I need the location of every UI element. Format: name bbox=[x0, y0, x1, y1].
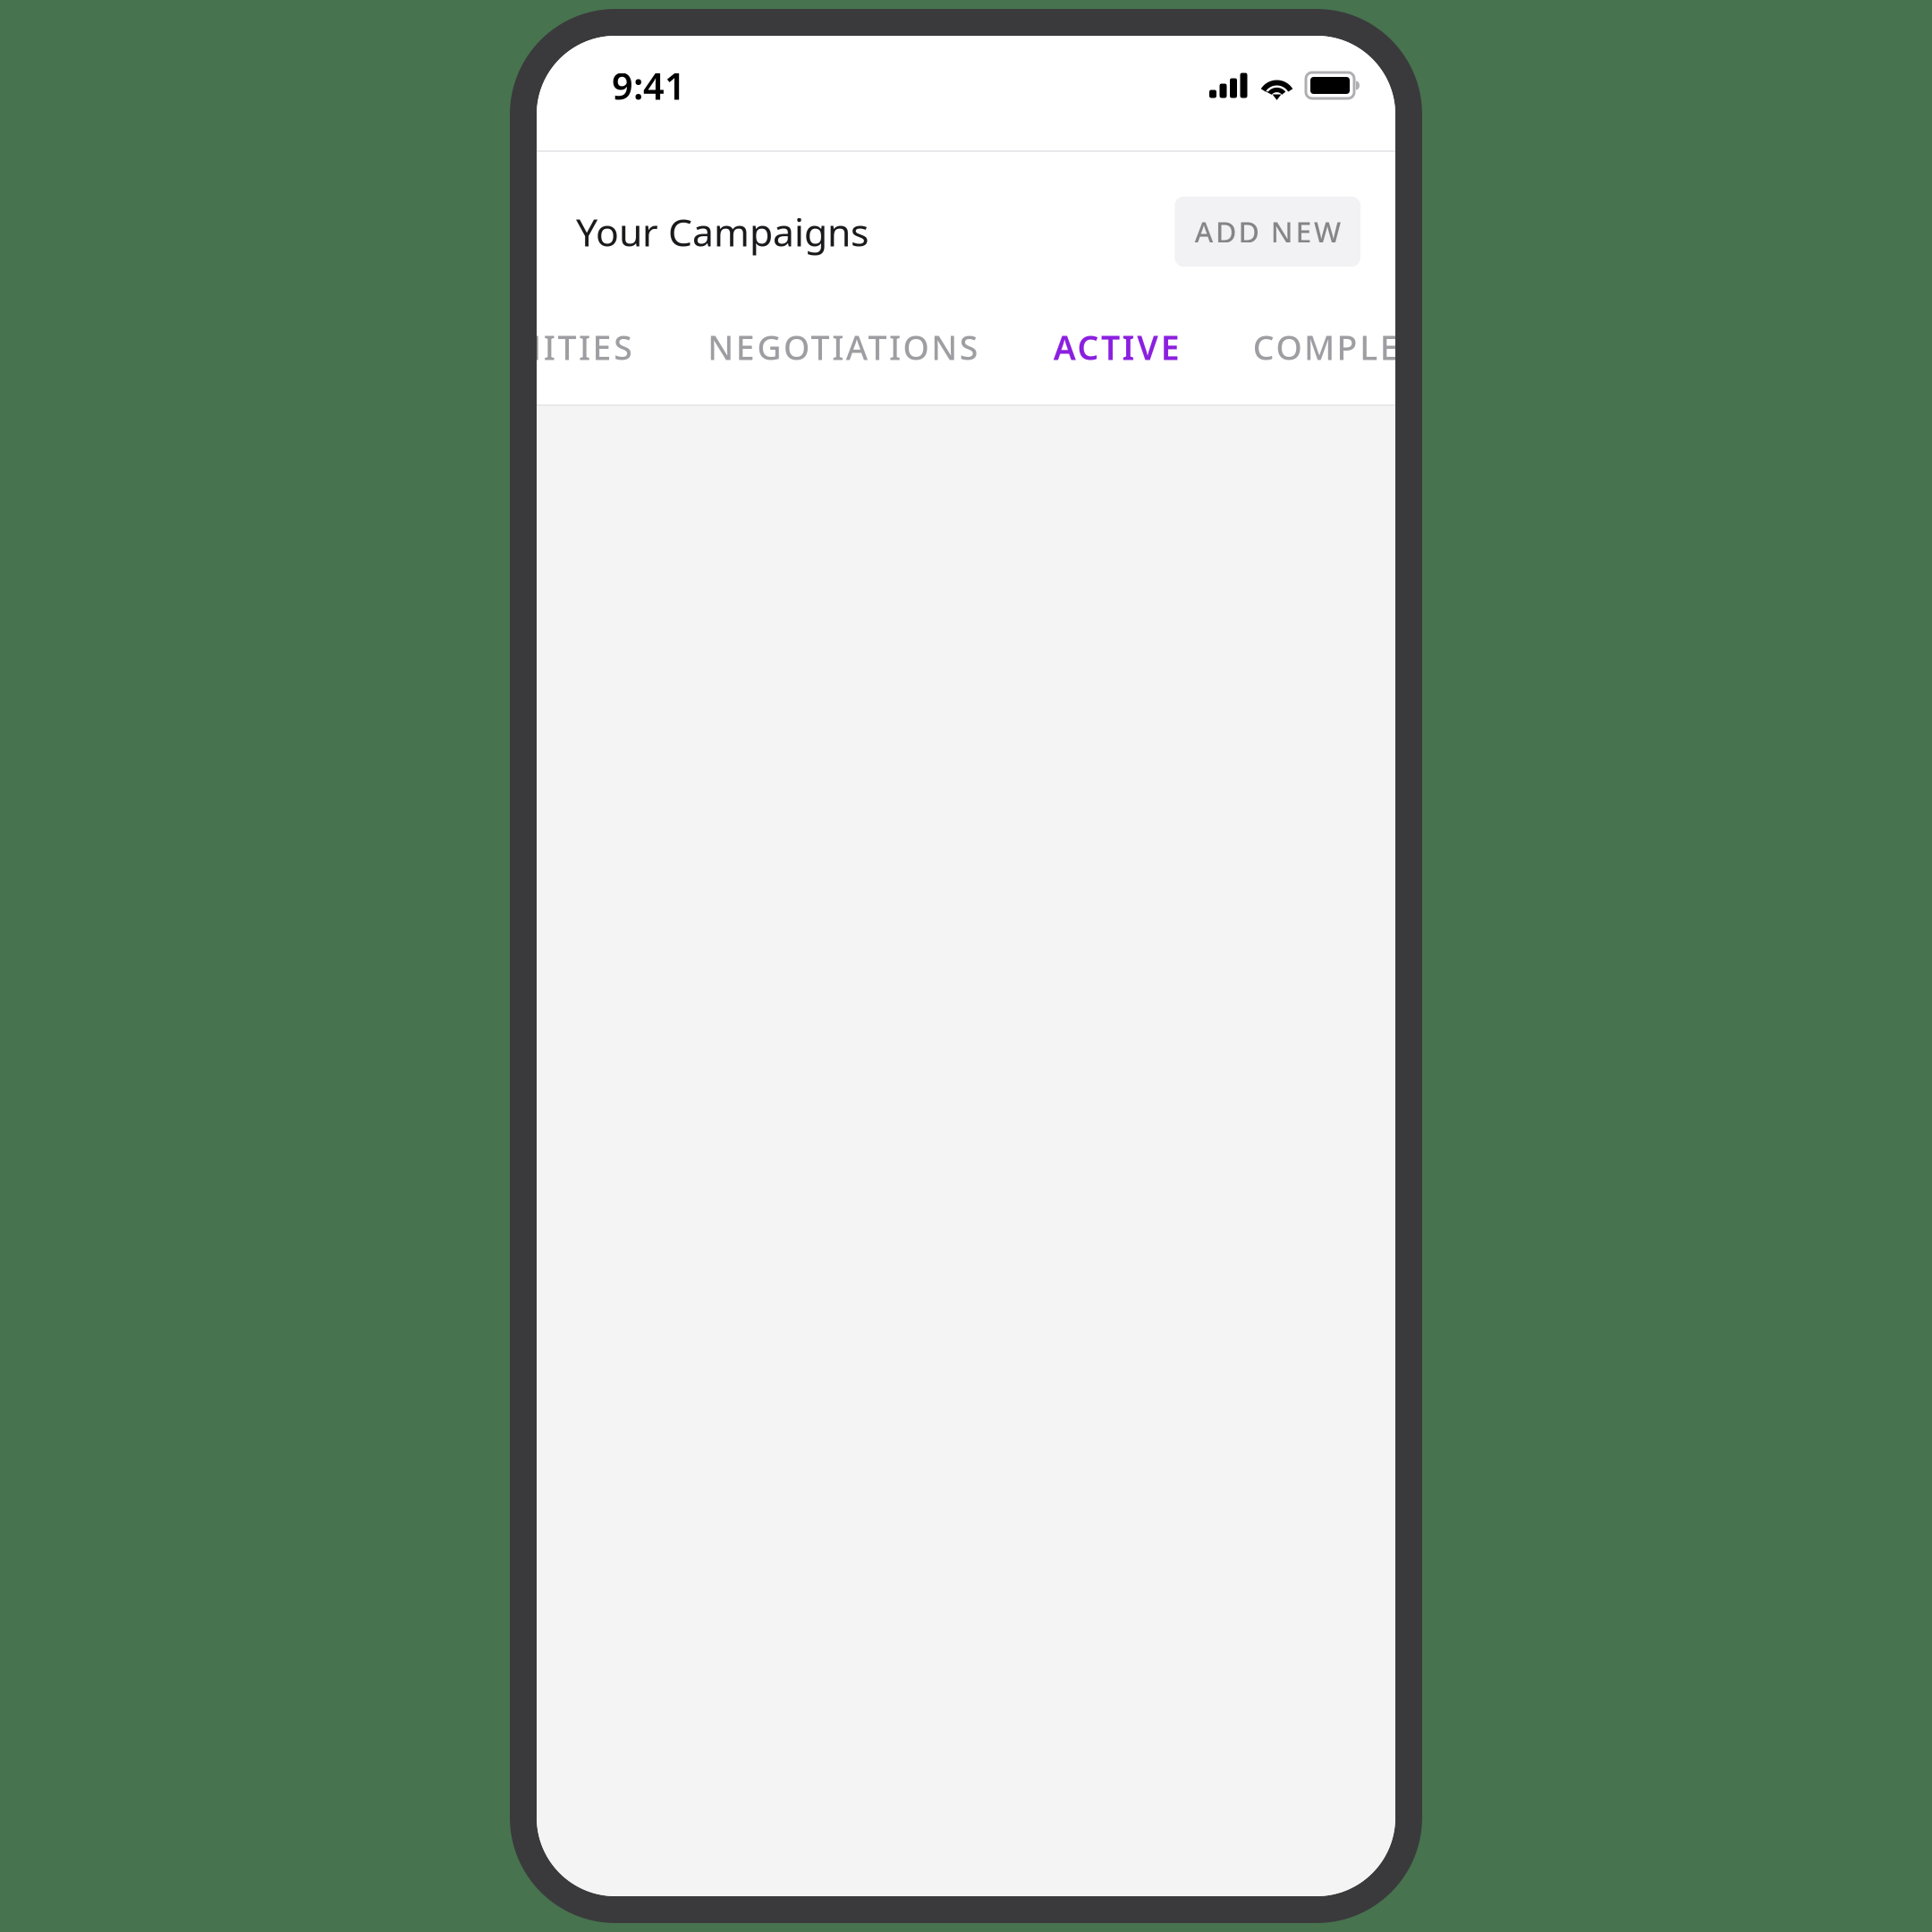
staticText: COMPLETED bbox=[1253, 325, 1467, 369]
staticText: OPPORTUNITIES bbox=[341, 325, 633, 369]
staticText: 9:41 bbox=[612, 61, 686, 110]
staticText: ADD NEW bbox=[1194, 213, 1341, 251]
button[interactable]: NEGOTIATIONS bbox=[708, 300, 978, 409]
button[interactable]: ACTIVE bbox=[1053, 300, 1180, 409]
staticText: NEGOTIATIONS bbox=[708, 325, 978, 369]
button[interactable]: ADD NEW bbox=[1175, 197, 1360, 267]
staticText: Your Campaigns bbox=[576, 206, 869, 257]
button[interactable]: OPPORTUNITIES bbox=[341, 300, 633, 409]
button[interactable]: COMPLETED bbox=[1253, 300, 1467, 409]
staticText: ACTIVE bbox=[1053, 325, 1180, 369]
